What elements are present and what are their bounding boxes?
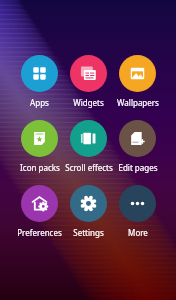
button[interactable]: Edit pages [119, 120, 156, 157]
staticText: Icon packs [20, 162, 60, 173]
staticText: Widgets [73, 97, 104, 108]
staticText: Apps [30, 97, 49, 108]
button[interactable]: Apps [21, 55, 58, 92]
button[interactable]: Settings [70, 185, 107, 222]
button[interactable]: Icon packs [21, 120, 58, 157]
staticText: Settings [73, 227, 104, 238]
staticText: Scroll effects [65, 162, 113, 173]
button[interactable]: Wallpapers [119, 55, 156, 92]
staticText: Wallpapers [117, 97, 159, 108]
staticText: Preferences [17, 227, 62, 238]
staticText: Edit pages [118, 162, 158, 173]
button[interactable]: Scroll effects [70, 120, 107, 157]
staticText: More [128, 227, 148, 238]
button[interactable]: Preferences [21, 185, 58, 222]
button[interactable]: More [119, 185, 156, 222]
button[interactable]: Widgets [70, 55, 107, 92]
